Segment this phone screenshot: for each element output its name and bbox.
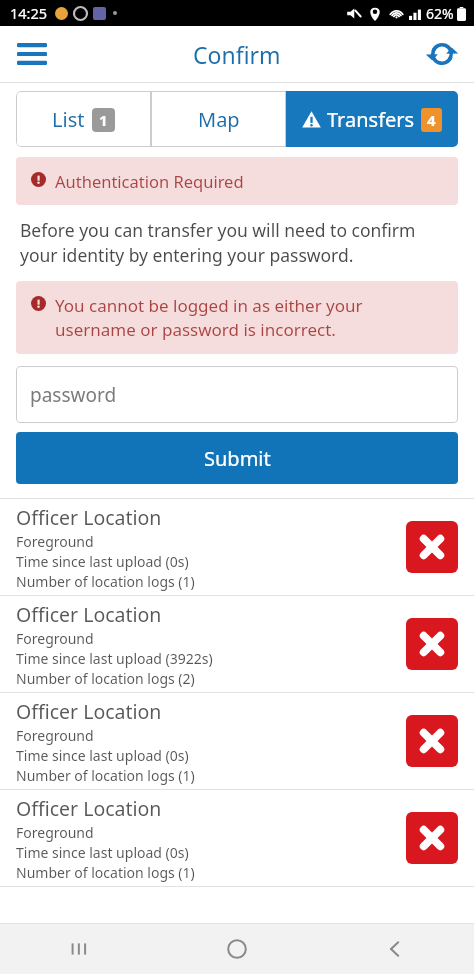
staticText: Number of location logs (1) (16, 766, 195, 785)
button[interactable]: Recents (0, 924, 158, 974)
staticText: Transfers (327, 106, 415, 133)
button[interactable]: password (16, 366, 458, 423)
staticText: Officer Location (16, 601, 162, 628)
staticText: Authentication Required (55, 170, 244, 192)
button[interactable]: Transfers (286, 91, 458, 147)
staticText: Number of location logs (2) (16, 669, 195, 688)
button[interactable]: Submit (16, 432, 458, 484)
staticText: 14:25 (10, 3, 48, 23)
staticText: Before you can transfer you will need to… (20, 218, 416, 267)
staticText: Foreground (16, 532, 94, 551)
button[interactable]: Delete (406, 715, 458, 767)
staticText: Time since last upload (3922s) (16, 649, 213, 668)
staticText: 62% (426, 4, 454, 23)
button[interactable]: List (16, 91, 151, 147)
staticText: List (52, 106, 85, 133)
staticText: Map (198, 106, 240, 133)
staticText: 4 (427, 110, 436, 130)
button[interactable]: Map (151, 91, 286, 147)
staticText: Number of location logs (1) (16, 572, 195, 591)
staticText: Officer Location (16, 504, 162, 531)
staticText: Time since last upload (0s) (16, 746, 189, 765)
button[interactable]: Menu (8, 30, 56, 78)
button[interactable]: Officer Location (0, 499, 474, 595)
staticText: You cannot be logged in as either your u… (55, 294, 363, 341)
button[interactable]: Officer Location (0, 693, 474, 789)
staticText: Foreground (16, 823, 94, 842)
staticText: 1 (99, 110, 108, 130)
staticText: Officer Location (16, 795, 162, 822)
staticText: Confirm (193, 39, 281, 70)
staticText: password (30, 382, 117, 408)
button[interactable]: Delete (406, 812, 458, 864)
staticText: Foreground (16, 629, 94, 648)
button[interactable]: Delete (406, 521, 458, 573)
button[interactable]: Officer Location (0, 790, 474, 886)
button[interactable]: Delete (406, 618, 458, 670)
button[interactable]: Officer Location (0, 596, 474, 692)
staticText: Submit (204, 445, 271, 472)
button[interactable]: Back (316, 924, 474, 974)
staticText: Number of location logs (1) (16, 863, 195, 882)
staticText: Time since last upload (0s) (16, 843, 189, 862)
staticText: Time since last upload (0s) (16, 552, 189, 571)
staticText: Foreground (16, 726, 94, 745)
staticText: Officer Location (16, 698, 162, 725)
button[interactable]: Home (158, 924, 316, 974)
button[interactable]: Refresh (418, 30, 466, 78)
